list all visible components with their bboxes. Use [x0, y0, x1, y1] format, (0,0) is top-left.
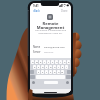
- button[interactable]: Remote Management: [47, 14, 53, 20]
- button[interactable]: l: [65, 65, 68, 69]
- staticText: q: [32, 61, 34, 64]
- staticText: h: [54, 66, 56, 69]
- button[interactable]: o: [63, 60, 66, 64]
- button[interactable]: s: [37, 65, 40, 69]
- staticText: e: [40, 61, 42, 64]
- button[interactable]: v: [49, 70, 52, 74]
- button[interactable]: u: [55, 60, 58, 64]
- staticText: g: [50, 66, 52, 69]
- button[interactable]: y: [51, 60, 54, 64]
- button[interactable]: i: [59, 60, 62, 64]
- staticText: c: [46, 71, 48, 74]
- staticText: x: [42, 71, 44, 74]
- staticText: p: [68, 61, 70, 64]
- staticText: acme.io: [44, 50, 54, 53]
- staticText: d: [42, 66, 44, 69]
- staticText: f: [46, 66, 47, 69]
- staticText: r: [44, 61, 45, 64]
- staticText: y: [52, 61, 54, 64]
- staticText: o: [64, 61, 66, 64]
- button[interactable]: Done: [60, 9, 69, 12]
- button[interactable]: g: [49, 65, 52, 69]
- staticText: This iPhone is supervised and managed by…: [33, 29, 68, 35]
- button[interactable]: f: [45, 65, 48, 69]
- staticText: Remote Management: [30, 21, 71, 30]
- button[interactable]: Back: [32, 9, 41, 12]
- button[interactable]: b: [53, 70, 56, 74]
- button[interactable]: q: [31, 60, 34, 64]
- button[interactable]: Name: [30, 44, 71, 49]
- button[interactable]: m: [61, 70, 64, 74]
- button[interactable]: x: [41, 70, 44, 74]
- staticText: Back: [34, 9, 40, 12]
- button[interactable]: h: [53, 65, 56, 69]
- staticText: v: [50, 71, 52, 74]
- staticText: j: [58, 66, 59, 69]
- staticText: 9:41: [33, 4, 39, 7]
- staticText: z: [38, 71, 40, 74]
- staticText: m: [61, 71, 64, 74]
- button[interactable]: Dictate: [66, 81, 69, 84]
- button[interactable]: a: [33, 65, 36, 69]
- button[interactable]: n: [57, 70, 60, 74]
- button[interactable]: d: [41, 65, 44, 69]
- button[interactable]: t: [47, 60, 50, 64]
- staticText: s: [38, 66, 40, 69]
- button[interactable]: r: [43, 60, 46, 64]
- button[interactable]: w: [35, 60, 38, 64]
- staticText: u: [56, 61, 58, 64]
- staticText: w: [36, 61, 38, 64]
- staticText: Server: [33, 50, 41, 53]
- staticText: sarah@acme.com: [44, 45, 65, 48]
- button[interactable]: p: [67, 60, 70, 64]
- staticText: k: [62, 66, 64, 69]
- button[interactable]: j: [57, 65, 60, 69]
- button[interactable]: c: [45, 70, 48, 74]
- staticText: t: [48, 61, 49, 64]
- button[interactable]: z: [37, 70, 40, 74]
- staticText: a: [34, 66, 36, 69]
- staticText: l: [66, 66, 67, 69]
- staticText: n: [58, 71, 60, 74]
- button[interactable]: k: [61, 65, 64, 69]
- button[interactable]: Server: [30, 49, 71, 54]
- staticText: Name: [33, 45, 41, 48]
- button[interactable]: e: [39, 60, 42, 64]
- staticText: b: [54, 71, 56, 74]
- button[interactable]: Emoji: [32, 81, 35, 84]
- staticText: Done: [61, 9, 68, 12]
- staticText: i: [60, 61, 61, 64]
